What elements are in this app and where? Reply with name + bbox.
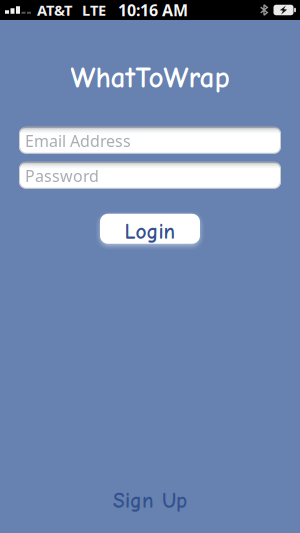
button[interactable]: Email Address	[19, 127, 281, 154]
button[interactable]: Password	[19, 162, 281, 189]
staticText: AT&T	[37, 0, 72, 20]
staticText: WhatToWrap	[70, 61, 229, 95]
staticText: Email Address	[25, 130, 131, 151]
button[interactable]: Login	[100, 214, 200, 244]
staticText: Login	[124, 219, 175, 244]
staticText: Password	[25, 165, 99, 186]
staticText: Sign Up	[113, 488, 187, 513]
staticText: LTE	[82, 0, 106, 20]
button[interactable]: Sign Up	[113, 488, 187, 513]
staticText: 10:16 AM	[118, 0, 188, 21]
